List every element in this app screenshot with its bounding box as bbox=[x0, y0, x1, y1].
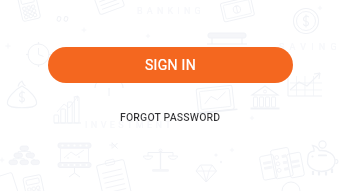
button[interactable]: FORGOT PASSWORD bbox=[114, 109, 227, 125]
staticText: SIGN IN bbox=[145, 57, 197, 73]
button[interactable]: SIGN IN bbox=[48, 47, 293, 83]
staticText: FORGOT PASSWORD bbox=[120, 111, 221, 123]
